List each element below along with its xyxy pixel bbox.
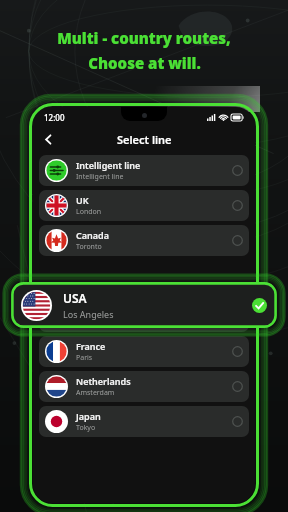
- staticText: Canada: [76, 229, 109, 241]
- staticText: 12:00: [44, 112, 65, 123]
- staticText: Select line: [117, 132, 172, 147]
- staticText: Paris: [76, 353, 93, 363]
- staticText: Germany: [76, 305, 117, 317]
- staticText: Intelligent line: [76, 159, 141, 171]
- staticText: UK: [76, 194, 89, 206]
- button[interactable]: Intelligent line: [39, 155, 249, 186]
- staticText: Tokyo: [76, 423, 96, 433]
- button[interactable]: UK: [39, 190, 249, 221]
- button[interactable]: Netherlands: [39, 371, 249, 402]
- staticText: Amsterdam: [76, 388, 115, 398]
- staticText: Netherlands: [76, 375, 131, 387]
- staticText: London: [76, 207, 102, 217]
- button[interactable]: France: [39, 336, 249, 367]
- staticText: France: [76, 340, 106, 352]
- button[interactable]: Japan: [39, 406, 249, 437]
- staticText: Intelligent line: [76, 172, 124, 182]
- button[interactable]: Back: [37, 128, 59, 150]
- staticText: Multi - country routes,: [57, 28, 231, 48]
- staticText: Los Angeles: [63, 308, 114, 320]
- staticText: USA: [63, 290, 87, 306]
- button[interactable]: Germany: [39, 301, 249, 332]
- staticText: Toronto: [76, 242, 102, 252]
- staticText: Berlin: [76, 318, 96, 328]
- button[interactable]: USA: [11, 282, 277, 328]
- staticText: Choose at will.: [88, 53, 201, 73]
- button[interactable]: Canada: [39, 225, 249, 256]
- staticText: Japan: [76, 410, 101, 422]
